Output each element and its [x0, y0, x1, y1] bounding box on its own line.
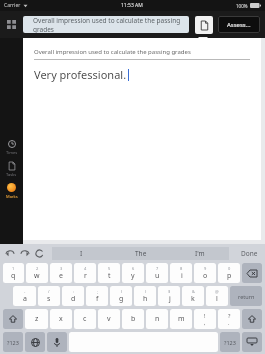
staticText: e	[59, 271, 63, 281]
button[interactable]: return	[230, 286, 262, 306]
button[interactable]: Language	[25, 332, 45, 352]
button[interactable]: Times	[0, 136, 23, 158]
button[interactable]: &	[182, 286, 204, 306]
staticText: 3	[60, 266, 63, 271]
button[interactable]: 8	[170, 263, 192, 283]
staticText: return	[238, 293, 255, 300]
button[interactable]: Document	[195, 16, 213, 34]
staticText: g	[119, 294, 124, 304]
button[interactable]: Assess...	[218, 16, 260, 33]
staticText: i	[181, 271, 183, 281]
staticText: t	[108, 271, 111, 281]
button[interactable]: Shift	[242, 309, 262, 329]
button[interactable]: Redo	[20, 249, 29, 258]
staticText: Very professional.	[34, 67, 127, 82]
staticText: h	[143, 294, 148, 304]
staticText: 0	[228, 266, 231, 271]
button[interactable]: :	[62, 286, 84, 306]
button[interactable]: v	[98, 309, 120, 329]
button[interactable]: z	[25, 309, 48, 329]
button[interactable]: ?123	[220, 332, 240, 352]
staticText: 9	[204, 266, 207, 271]
button[interactable]: /	[38, 286, 60, 306]
staticText: q	[11, 271, 16, 281]
staticText: )	[145, 289, 147, 294]
staticText: p	[227, 271, 232, 281]
button[interactable]: b	[122, 309, 144, 329]
button[interactable]: I'm	[170, 247, 229, 260]
button[interactable]: $	[158, 286, 180, 306]
button[interactable]: Menu	[0, 11, 23, 38]
button[interactable]: 4	[74, 263, 96, 283]
staticText: 8	[180, 266, 183, 271]
staticText: Tasks	[6, 172, 17, 177]
button[interactable]: ?123	[3, 332, 23, 352]
button[interactable]: n	[146, 309, 168, 329]
button[interactable]: x	[50, 309, 72, 329]
staticText: n	[155, 314, 160, 324]
staticText: 100%	[236, 3, 248, 9]
staticText: m	[178, 314, 185, 324]
button[interactable]: 0	[218, 263, 240, 283]
button[interactable]: Shift	[3, 309, 23, 329]
staticText: Marks	[6, 194, 18, 199]
staticText: Overall impression used to calculate the…	[33, 16, 189, 33]
staticText: c	[83, 314, 87, 324]
button[interactable]: 6	[122, 263, 144, 283]
button[interactable]: @	[206, 286, 228, 306]
staticText: 7	[156, 266, 159, 271]
button[interactable]: Tasks	[0, 158, 23, 180]
staticText: I'm	[195, 249, 205, 258]
staticText: 1	[12, 266, 15, 271]
staticText: o	[203, 271, 208, 281]
button[interactable]: )	[134, 286, 156, 306]
staticText: k	[191, 294, 195, 304]
button[interactable]: Hide keyboard	[242, 332, 262, 352]
button[interactable]: Overall impression used to calculate the…	[23, 16, 189, 33]
staticText: ;	[97, 289, 99, 294]
button[interactable]: c	[74, 309, 96, 329]
staticText: f	[96, 294, 99, 304]
staticText: (	[121, 289, 123, 294]
button[interactable]: ;	[86, 286, 108, 306]
staticText: $	[168, 289, 171, 294]
button[interactable]: Undo	[5, 249, 14, 258]
staticText: r	[84, 271, 87, 281]
button[interactable]: Done	[239, 249, 260, 258]
staticText: Assess...	[227, 21, 251, 29]
staticText: -	[24, 289, 26, 294]
button[interactable]: Backspace	[242, 263, 262, 283]
staticText: a	[23, 294, 27, 304]
button[interactable]: ? .	[218, 309, 240, 329]
button[interactable]: 9	[194, 263, 216, 283]
button[interactable]: (	[110, 286, 132, 306]
button[interactable]: ! ,	[194, 309, 216, 329]
button[interactable]: -	[13, 286, 36, 306]
staticText: j	[169, 294, 171, 304]
staticText: s	[47, 294, 51, 304]
staticText: 4	[84, 266, 87, 271]
button[interactable]: 1	[3, 263, 24, 283]
staticText: z	[35, 314, 39, 324]
staticText: b	[131, 314, 136, 324]
staticText: Done	[241, 249, 258, 258]
staticText: ?123	[7, 339, 19, 346]
button[interactable]: Marks	[0, 180, 23, 202]
button[interactable]: Voice input	[47, 332, 67, 352]
staticText: 5	[108, 266, 111, 271]
button[interactable]: 3	[50, 263, 72, 283]
button[interactable]: 7	[146, 263, 168, 283]
button[interactable]: 5	[98, 263, 120, 283]
staticText: 6	[132, 266, 135, 271]
button[interactable]: Paste	[35, 249, 44, 258]
button[interactable]: 2	[26, 263, 48, 283]
staticText: d	[71, 294, 76, 304]
button[interactable]: I	[52, 247, 111, 260]
staticText: v	[107, 314, 111, 324]
staticText: ?123	[224, 339, 236, 346]
staticText: @	[215, 289, 219, 294]
button[interactable]: The	[111, 247, 170, 260]
staticText: w	[34, 271, 40, 281]
button[interactable]: m	[170, 309, 192, 329]
